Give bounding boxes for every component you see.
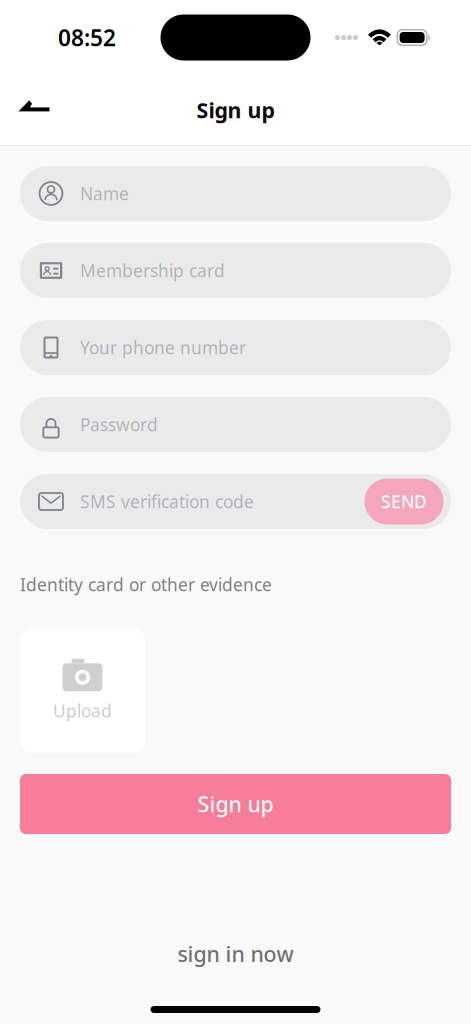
staticText: sign in now — [177, 940, 293, 968]
button[interactable]: Upload — [20, 628, 145, 753]
staticText: Your phone number — [80, 336, 246, 359]
staticText: Sign up — [197, 790, 273, 818]
staticText: Identity card or other evidence — [20, 573, 272, 596]
staticText: Sign up — [196, 96, 274, 124]
button[interactable]: Back — [10, 86, 58, 134]
staticText: SMS verification code — [80, 490, 254, 513]
button[interactable]: sign in now — [177, 940, 293, 968]
staticText: Upload — [53, 699, 112, 722]
staticText: Membership card — [80, 259, 225, 282]
staticText: Name — [80, 182, 129, 205]
button[interactable]: Sign up — [20, 774, 451, 834]
staticText: SEND — [381, 490, 427, 513]
staticText: Password — [80, 413, 158, 436]
staticText: 08:52 — [58, 22, 116, 52]
button[interactable]: SEND — [364, 478, 443, 524]
